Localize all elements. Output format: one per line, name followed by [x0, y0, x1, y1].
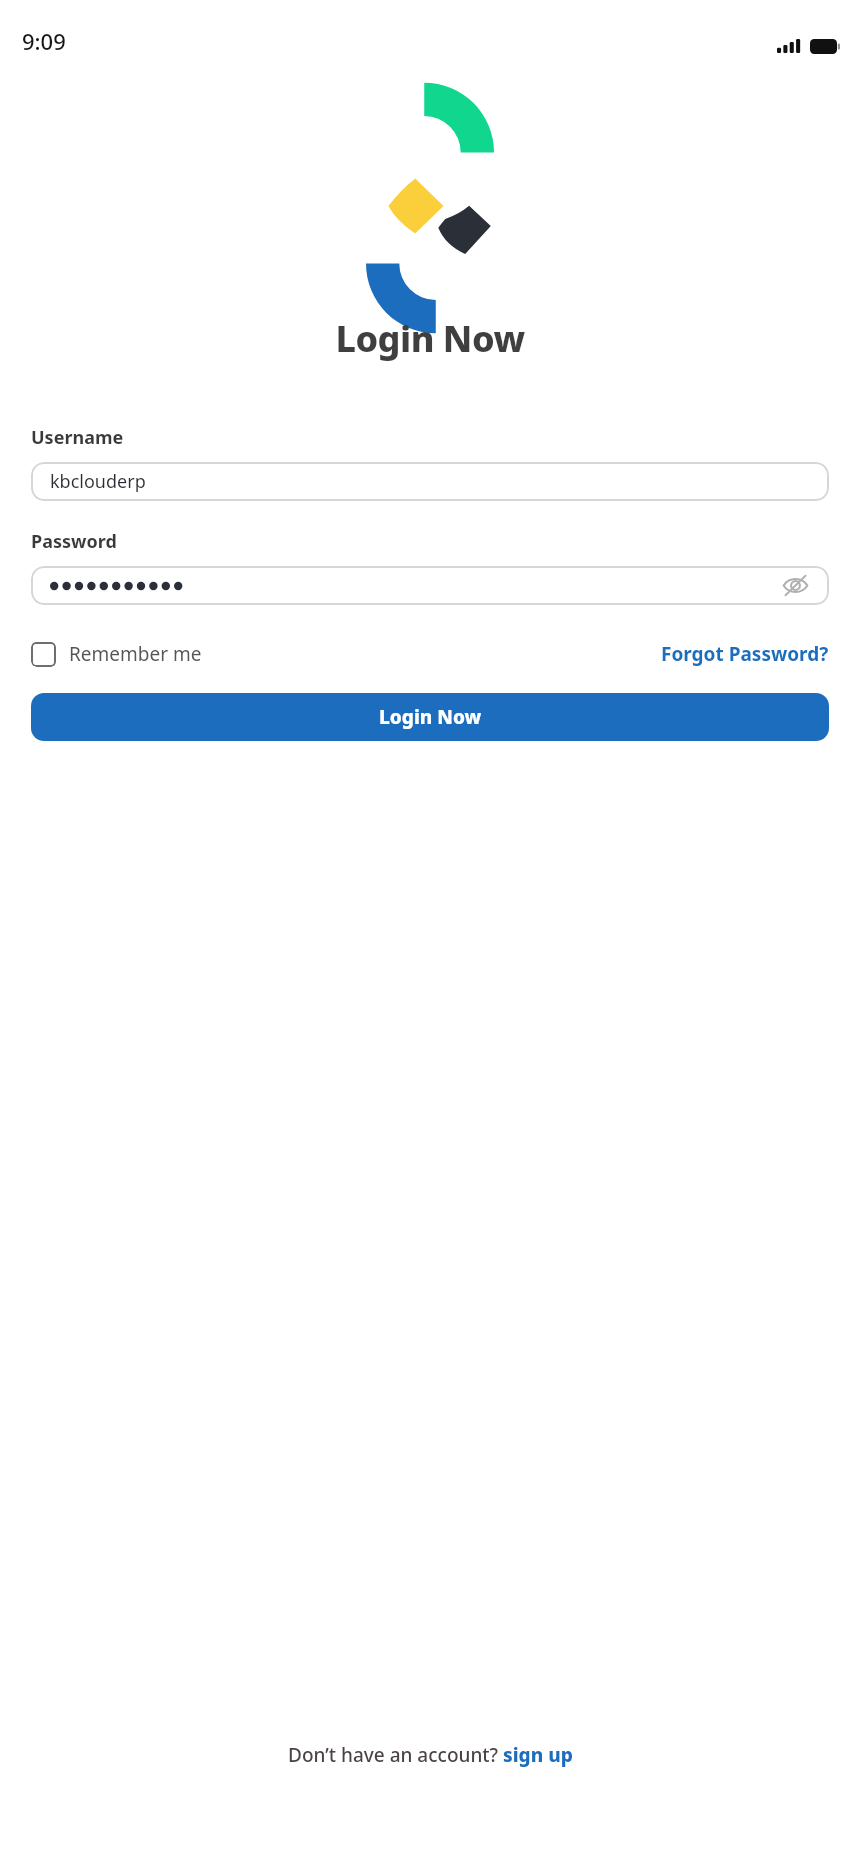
button[interactable]: Show password [31, 566, 829, 605]
staticText: Forgot Password? [661, 641, 829, 667]
button[interactable]: Remember me [31, 641, 202, 667]
staticText: 9:09 [22, 26, 66, 56]
staticText: kbclouderp [50, 469, 146, 494]
staticText: Remember me [69, 641, 202, 667]
staticText: Login Now [379, 704, 482, 730]
staticText: Don’t have an account? sign up [288, 1742, 573, 1768]
button[interactable]: Show password [773, 566, 817, 605]
button[interactable]: Login Now [31, 693, 829, 741]
button[interactable]: Don’t have an account? sign up [284, 1740, 577, 1770]
button[interactable]: kbclouderp [31, 462, 829, 501]
staticText: Login Now [0, 314, 860, 363]
staticText: Username [31, 425, 124, 450]
button[interactable]: Forgot Password? [661, 641, 829, 667]
staticText: Password [31, 529, 117, 554]
